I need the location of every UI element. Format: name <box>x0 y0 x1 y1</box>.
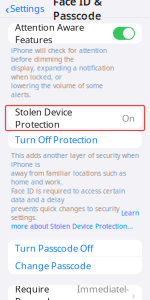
staticText: Change Passcode <box>15 259 91 272</box>
button[interactable]: Turn Passcode Off <box>8 240 142 257</box>
staticText: Stolen Device Protection <box>15 106 72 130</box>
staticText: away from familiar locations such as hom… <box>11 169 126 186</box>
staticText: Attention Aware Features <box>15 21 84 46</box>
button[interactable]: Change Passcode <box>8 257 142 274</box>
button[interactable]: Stolen Device Protection <box>8 108 142 128</box>
staticText: Settings <box>10 2 44 15</box>
staticText: Face ID is required to access certain da… <box>11 186 125 204</box>
staticText: Face ID & Passcode <box>53 0 102 23</box>
staticText: iPhone will check for attention before d… <box>11 46 114 99</box>
staticText: more about Stolen Device Protection... <box>11 222 133 231</box>
button[interactable]: ‹ <box>0 0 44 17</box>
staticText: ‹ <box>5 0 9 17</box>
staticText: Learn <box>121 209 139 217</box>
staticText: This adds another layer of security when… <box>11 151 139 169</box>
button[interactable]: Require Passcode <box>8 285 142 300</box>
staticText: Turn Passcode Off <box>15 242 93 254</box>
staticText: Require Passcode <box>15 283 55 300</box>
staticText: On <box>122 112 135 124</box>
staticText: › <box>132 288 135 300</box>
button[interactable]: Attention Aware Features <box>8 23 142 43</box>
staticText: Turn Off Protection <box>15 133 98 146</box>
staticText: Immediately <box>77 283 129 300</box>
staticText: prevents quick changes to security setti… <box>11 204 119 222</box>
button[interactable]: Turn Off Protection <box>8 131 142 148</box>
